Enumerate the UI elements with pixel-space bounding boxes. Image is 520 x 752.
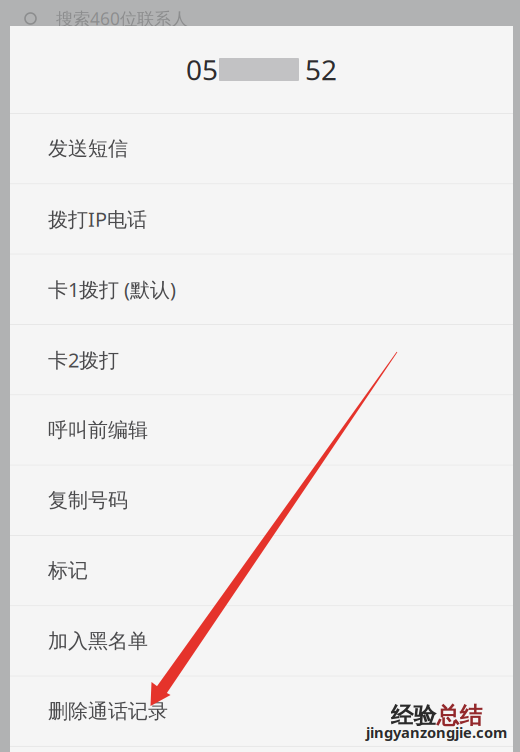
button[interactable]: 加入黑名单 — [10, 606, 513, 676]
button[interactable]: 卡1拨打 (默认) — [10, 255, 513, 324]
staticText: 52 — [305, 51, 337, 88]
staticText: 呼叫前编辑 — [48, 418, 148, 442]
staticText: 搜索460位联系人 — [56, 7, 188, 30]
staticText: 发送短信 — [48, 136, 128, 161]
staticText: 加入黑名单 — [48, 629, 148, 653]
staticText: 卡2拨打 — [48, 346, 119, 373]
button[interactable]: 卡2拨打 — [10, 325, 513, 394]
staticText: 总结 — [436, 702, 482, 729]
staticText: 拨打IP电话 — [48, 206, 147, 232]
button[interactable]: 拨打IP电话 — [10, 184, 513, 254]
button[interactable]: 呼叫前编辑 — [10, 395, 513, 465]
staticText: 标记 — [48, 558, 88, 583]
staticText: jingyanzongjie.com — [366, 722, 507, 742]
button[interactable]: 发送短信 — [10, 114, 513, 183]
staticText: 卡1拨打 (默认) — [48, 276, 176, 303]
button[interactable]: 复制号码 — [10, 466, 513, 535]
button[interactable]: 删除通话记录 — [10, 677, 513, 746]
staticText: 05 — [186, 51, 218, 88]
staticText: 经验 — [390, 702, 436, 729]
button[interactable]: 标记 — [10, 536, 513, 605]
staticText: 删除通话记录 — [48, 699, 168, 724]
staticText: 复制号码 — [48, 488, 128, 513]
